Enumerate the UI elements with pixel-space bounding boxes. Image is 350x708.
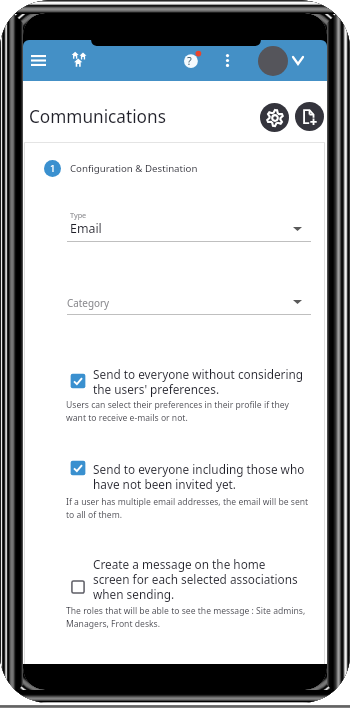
staticText: Communications [29,105,166,128]
button[interactable]: Checkbox [70,373,86,389]
button[interactable]: Settings [260,103,289,132]
staticText: Send to everyone including those who hav… [93,461,308,492]
button[interactable]: New document [295,102,324,131]
staticText: 1 [50,162,56,175]
button[interactable]: Help [180,46,206,72]
button[interactable]: 1 [44,160,198,177]
staticText: Create a message on the home screen for … [93,556,300,602]
staticText: ? [187,53,192,68]
staticText: The roles that will be able to see the m… [66,605,308,630]
button[interactable]: Menu [25,47,51,73]
button[interactable]: Home [66,46,92,72]
staticText: Category [67,296,110,309]
button[interactable]: Checkbox [70,460,86,476]
button[interactable]: More options [214,47,240,73]
button[interactable]: Account [258,44,308,77]
staticText: Type [70,210,87,220]
staticText: Configuration & Destination [70,162,198,175]
button[interactable]: Checkbox [70,579,86,595]
staticText: If a user has multiple email addresses, … [66,496,313,521]
staticText: Users can select their preferences in th… [66,399,308,424]
staticText: Email [70,220,102,237]
staticText: Send to everyone without considering the… [93,366,304,397]
